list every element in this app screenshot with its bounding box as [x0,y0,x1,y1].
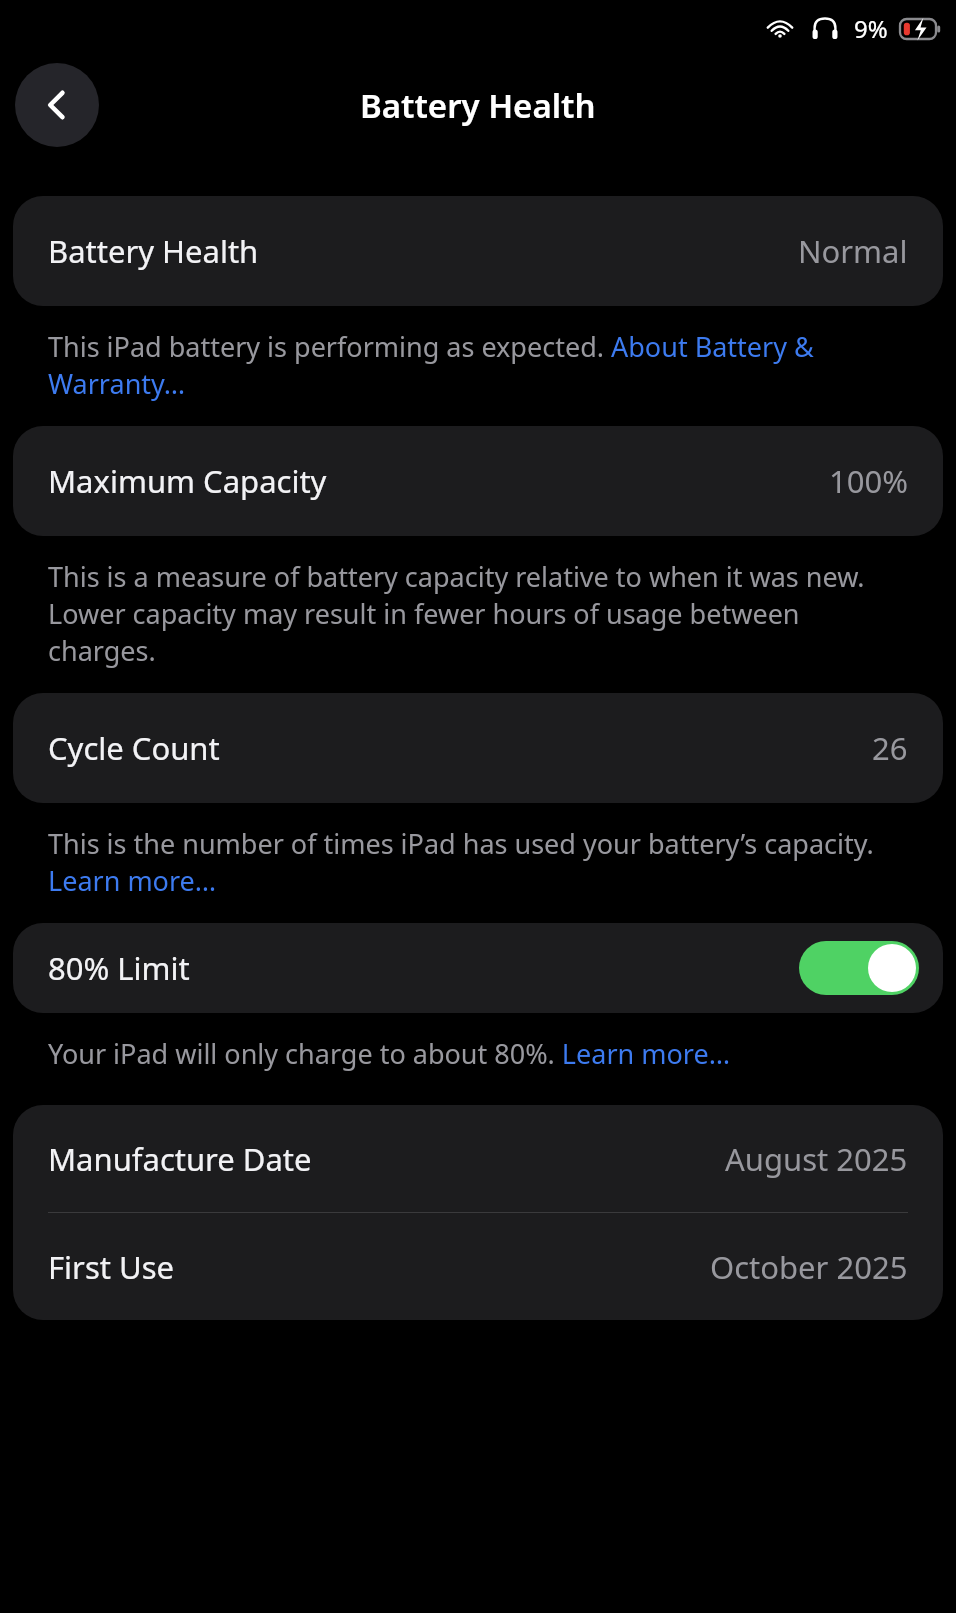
button[interactable]: Manufacture Date [13,1105,943,1212]
staticText: Normal [798,230,908,272]
staticText: Your iPad will only charge to about 80%.… [48,1035,731,1072]
staticText: Battery Health [360,83,596,128]
staticText: This is a measure of battery capacity re… [48,558,884,669]
button[interactable]: First Use [13,1213,943,1320]
staticText: First Use [48,1246,174,1288]
button[interactable]: Maximum Capacity [13,426,943,536]
staticText: This iPad battery is performing as expec… [48,328,884,402]
staticText: This is the number of times iPad has use… [48,825,884,899]
button[interactable]: Battery Health [13,196,943,306]
button[interactable]: Back [15,63,99,147]
staticText: August 2025 [725,1138,908,1180]
staticText: Maximum Capacity [48,460,327,502]
staticText: Battery Health [48,230,259,272]
staticText: October 2025 [710,1246,908,1288]
button[interactable]: 80% Limit [13,923,943,1013]
staticText: 26 [872,727,908,769]
button[interactable]: Cycle Count [13,693,943,803]
button[interactable]: 80% Limit toggle, on [799,941,919,995]
staticText: 100% [829,460,908,502]
staticText: 80% Limit [48,947,190,989]
staticText: Manufacture Date [48,1138,312,1180]
staticText: 9% [854,12,888,45]
staticText: Cycle Count [48,727,220,769]
